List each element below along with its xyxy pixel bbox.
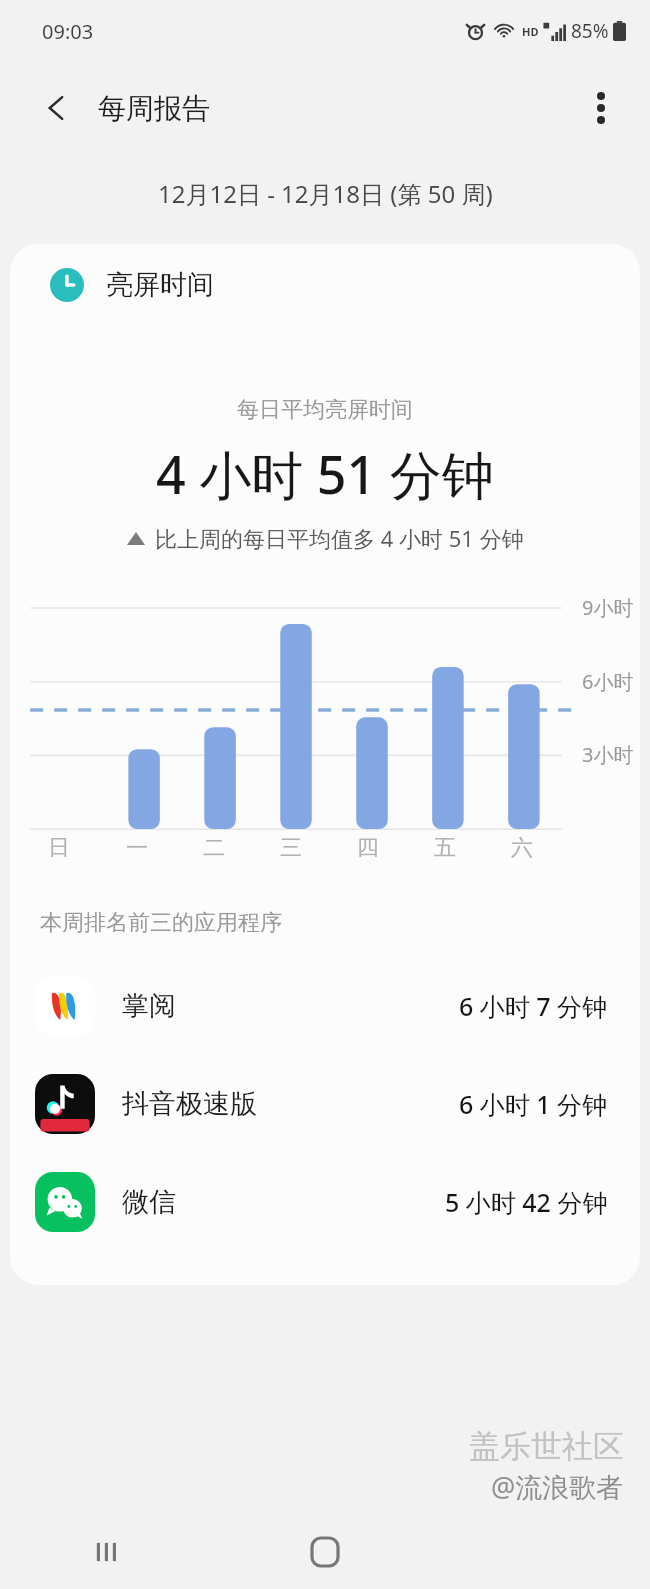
staticText: 9小时 [582, 594, 634, 621]
button[interactable]: More options [572, 79, 630, 137]
staticText: 本周排名前三的应用程序 [40, 909, 282, 937]
button[interactable]: 亮屏时间 [10, 244, 640, 326]
staticText: 二 [203, 834, 225, 862]
staticText: 12月12日 - 12月18日 (第 50 周) [158, 177, 493, 210]
staticText: 掌阅 [122, 989, 176, 1023]
staticText: 4 小时 51 分钟 [156, 438, 494, 509]
staticText: HD [522, 24, 539, 39]
staticText: 09:03 [42, 18, 94, 45]
staticText: 五 [434, 834, 456, 862]
staticText: @流浪歌者 [491, 1468, 624, 1505]
staticText: 每周报告 [98, 91, 210, 126]
staticText: 6小时 [582, 668, 634, 695]
staticText: 6 小时 1 分钟 [459, 1087, 608, 1121]
button[interactable]: 掌阅 [10, 957, 640, 1055]
button[interactable]: Back [26, 77, 88, 139]
staticText: 6 小时 7 分钟 [459, 989, 608, 1023]
staticText: 抖音极速版 [122, 1087, 257, 1121]
button[interactable]: 微信 [10, 1153, 640, 1251]
staticText: 六 [511, 834, 533, 862]
staticText: 比上周的每日平均值多 4 小时 51 分钟 [155, 523, 524, 553]
button[interactable]: Recent apps [0, 1515, 216, 1589]
staticText: 5 小时 42 分钟 [445, 1185, 608, 1219]
staticText: 每日平均亮屏时间 [237, 396, 413, 424]
staticText: 一 [126, 834, 148, 862]
staticText: 微信 [122, 1185, 176, 1219]
staticText: 日 [48, 834, 70, 862]
button[interactable]: Home [216, 1515, 433, 1589]
staticText: 四 [357, 834, 379, 862]
staticText: 85% [571, 18, 609, 44]
staticText: 盖乐世社区 [469, 1427, 624, 1466]
staticText: 三 [280, 834, 302, 862]
button[interactable]: 抖音极速版 [10, 1055, 640, 1153]
staticText: 亮屏时间 [106, 268, 214, 302]
staticText: 3小时 [582, 741, 634, 768]
